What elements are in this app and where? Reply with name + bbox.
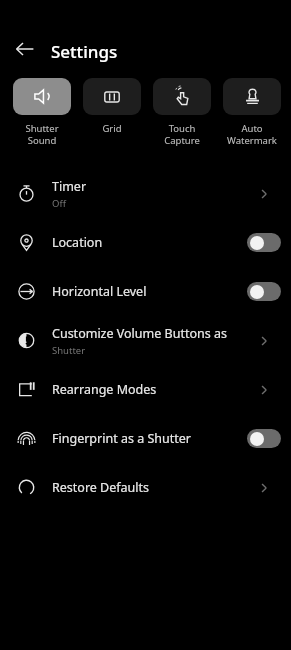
staticText: Touch Capture: [153, 122, 211, 147]
staticText: Customize Volume Buttons as: [52, 325, 227, 342]
button[interactable]: Back: [8, 32, 42, 66]
button[interactable]: Location: [0, 218, 291, 267]
staticText: Rearrange Modes: [52, 381, 157, 398]
staticText: Shutter: [52, 344, 86, 357]
button[interactable]: Customize Volume Buttons as: [0, 316, 291, 365]
button[interactable]: Auto Watermark: [223, 78, 281, 147]
button[interactable]: Rearrange Modes: [0, 365, 291, 414]
staticText: Timer: [52, 178, 87, 195]
button[interactable]: Grid: [83, 78, 141, 135]
button[interactable]: Toggle: [247, 233, 281, 252]
button[interactable]: Horizontal Level: [0, 267, 291, 316]
staticText: Auto Watermark: [227, 122, 277, 147]
staticText: Restore Defaults: [52, 479, 150, 496]
staticText: Off: [52, 197, 66, 210]
button[interactable]: Timer: [0, 169, 291, 218]
staticText: Settings: [51, 40, 118, 63]
button[interactable]: Toggle: [247, 429, 281, 448]
staticText: Shutter Sound: [13, 122, 71, 147]
staticText: Horizontal Level: [52, 283, 147, 300]
button[interactable]: Touch Capture: [153, 78, 211, 147]
staticText: Location: [52, 234, 103, 251]
button[interactable]: Shutter Sound: [13, 78, 71, 147]
staticText: Fingerprint as a Shutter: [52, 430, 191, 447]
button[interactable]: Toggle: [247, 282, 281, 301]
button[interactable]: Fingerprint as a Shutter: [0, 414, 291, 463]
button[interactable]: Restore Defaults: [0, 463, 291, 512]
staticText: Grid: [102, 122, 122, 135]
